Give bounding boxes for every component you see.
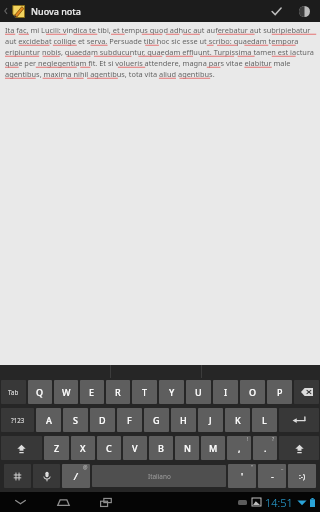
button[interactable]: Italiano (92, 465, 226, 487)
staticText: aut excidebat collige et serva. Persuade… (5, 36, 299, 46)
button[interactable]: D (90, 408, 115, 432)
staticText: , (238, 442, 241, 454)
button[interactable]: More options (293, 0, 315, 22)
button[interactable]: Voice input (33, 464, 60, 488)
staticText: Y (169, 386, 175, 398)
button[interactable]: C (97, 436, 121, 460)
staticText: H (180, 414, 187, 426)
button[interactable]: Z (44, 436, 69, 460)
button[interactable]: Q (28, 380, 52, 404)
button[interactable]: Ita fac, mi Lucili: vindica te tibi, et … (0, 22, 320, 365)
staticText: Ita fac, mi Lucili: vindica te tibi, et … (5, 25, 311, 35)
button[interactable]: Recent apps (93, 492, 119, 512)
button[interactable]: / (62, 464, 90, 488)
staticText: " (251, 464, 254, 471)
staticText: T (142, 386, 148, 398)
button[interactable]: M (201, 436, 225, 460)
button[interactable]: F (117, 408, 142, 432)
staticText: agentibus, maxima nihil agentibus, tota … (5, 69, 215, 79)
staticText: O (249, 386, 257, 398)
staticText: Italiano (148, 472, 171, 481)
staticText: I (224, 386, 228, 398)
button[interactable]: E (80, 380, 104, 404)
staticText: quae per neglegentiam fit. Et si volueri… (5, 58, 291, 68)
button[interactable]: K (225, 408, 250, 432)
button[interactable]: T (132, 380, 157, 404)
staticText: X (80, 442, 86, 454)
staticText: G (153, 414, 160, 426)
button[interactable]: J (198, 408, 223, 432)
staticText: A (46, 414, 52, 426)
button[interactable]: Done (263, 0, 289, 22)
button[interactable]: H (171, 408, 196, 432)
staticText: J (209, 414, 212, 426)
button[interactable]: :-) (288, 464, 316, 488)
button[interactable]: ?123 (1, 408, 34, 432)
staticText: Z (54, 442, 60, 454)
staticText: ?123 (11, 416, 25, 424)
staticText: C (106, 442, 112, 454)
button[interactable]: - (258, 464, 286, 488)
button[interactable]: , (227, 436, 251, 460)
staticText: B (158, 442, 164, 454)
staticText: R (115, 386, 121, 398)
staticText: F (127, 414, 132, 426)
staticText: M (209, 442, 218, 454)
button[interactable]: V (123, 436, 147, 460)
staticText: U (195, 386, 202, 398)
button[interactable]: Shift (1, 436, 42, 460)
staticText: P (277, 386, 283, 398)
staticText: 14:51 (265, 495, 293, 510)
button[interactable]: Keyboard settings (4, 464, 31, 488)
button[interactable]: B (149, 436, 173, 460)
button[interactable]: O (240, 380, 265, 404)
button[interactable]: A (36, 408, 61, 432)
staticText: eripiuntur nobis, quaedam subducuntur, q… (5, 47, 314, 57)
staticText: D (99, 414, 106, 426)
staticText: _ (281, 464, 284, 471)
staticText: N (184, 442, 191, 454)
staticText: ' (241, 470, 244, 482)
staticText: @ (83, 464, 88, 471)
button[interactable]: ' (228, 464, 256, 488)
staticText: Nuova nota (31, 5, 81, 17)
button[interactable]: I (213, 380, 238, 404)
staticText: Q (36, 386, 44, 398)
staticText: ? (272, 436, 275, 443)
staticText: Tab (8, 388, 19, 396)
staticText: L (262, 414, 267, 426)
staticText: :-) (299, 472, 305, 481)
button[interactable]: Y (159, 380, 184, 404)
button[interactable]: U (186, 380, 211, 404)
staticText: / (74, 470, 78, 482)
button[interactable]: N (175, 436, 199, 460)
button[interactable]: Home (50, 492, 76, 512)
staticText: . (264, 442, 267, 454)
button[interactable]: W (54, 380, 78, 404)
button[interactable]: S (63, 408, 88, 432)
staticText: - (271, 470, 274, 482)
button[interactable]: G (144, 408, 169, 432)
staticText: W (62, 386, 71, 398)
button[interactable]: P (267, 380, 292, 404)
button[interactable]: Backspace (294, 380, 319, 404)
staticText: S (73, 414, 78, 426)
staticText: ! (247, 436, 249, 443)
button[interactable]: X (71, 436, 95, 460)
button[interactable]: R (106, 380, 130, 404)
staticText: V (132, 442, 138, 454)
button[interactable]: Shift (279, 436, 319, 460)
staticText: E (89, 386, 95, 398)
staticText: K (235, 414, 241, 426)
button[interactable]: Enter (279, 408, 319, 432)
button[interactable]: . (253, 436, 277, 460)
button[interactable]: Tab (1, 380, 26, 404)
button[interactable]: L (252, 408, 277, 432)
button[interactable]: Hide keyboard (7, 492, 33, 512)
